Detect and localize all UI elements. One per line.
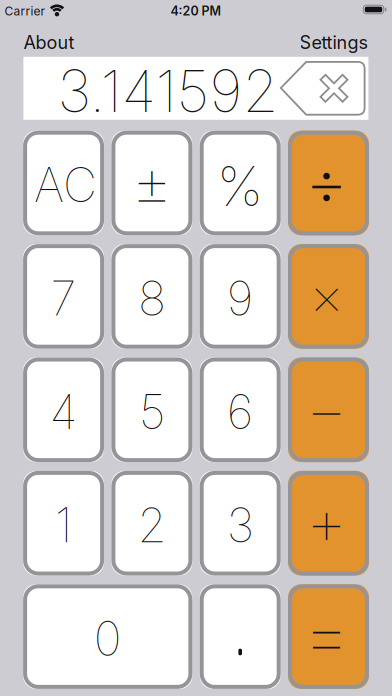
button[interactable]: Decimal point bbox=[200, 584, 281, 689]
button[interactable]: Divide bbox=[288, 131, 369, 235]
button[interactable]: 4 bbox=[23, 357, 104, 462]
staticText: 1 bbox=[55, 497, 72, 554]
button[interactable]: About bbox=[23, 32, 74, 53]
staticText: 3 bbox=[227, 497, 254, 554]
staticText: 7 bbox=[51, 270, 77, 327]
staticText: Carrier bbox=[4, 4, 45, 18]
button[interactable]: 5 bbox=[111, 357, 192, 462]
button[interactable]: % bbox=[200, 131, 281, 235]
button[interactable]: 0 bbox=[23, 584, 192, 689]
staticText: Settings bbox=[299, 32, 368, 53]
staticText: AC bbox=[34, 157, 97, 213]
button[interactable]: + bbox=[288, 471, 369, 575]
staticText: 6 bbox=[227, 383, 254, 440]
button[interactable]: − bbox=[288, 357, 369, 462]
staticText: ± bbox=[131, 144, 172, 222]
staticText: 9 bbox=[227, 270, 254, 327]
button[interactable]: 2 bbox=[111, 471, 192, 575]
staticText: 2 bbox=[137, 497, 166, 554]
staticText: 5 bbox=[139, 383, 165, 440]
button[interactable]: 8 bbox=[111, 244, 192, 349]
staticText: 3.141592 bbox=[57, 56, 278, 126]
staticText: + bbox=[305, 481, 347, 561]
button[interactable]: 6 bbox=[200, 357, 281, 462]
staticText: 0 bbox=[94, 610, 122, 667]
button[interactable]: = bbox=[288, 584, 369, 689]
button[interactable]: Delete bbox=[280, 61, 365, 116]
button[interactable]: 1 bbox=[23, 471, 104, 575]
button[interactable]: 9 bbox=[200, 244, 281, 349]
staticText: 4:20 PM bbox=[170, 3, 221, 18]
button[interactable]: 7 bbox=[23, 244, 104, 349]
button[interactable]: AC bbox=[23, 131, 104, 235]
staticText: − bbox=[305, 369, 347, 449]
button[interactable]: 3 bbox=[200, 471, 281, 575]
staticText: 4 bbox=[50, 383, 78, 440]
staticText: % bbox=[217, 153, 264, 219]
staticText: 8 bbox=[138, 270, 166, 327]
staticText: About bbox=[23, 32, 74, 53]
staticText: × bbox=[309, 263, 343, 328]
staticText: = bbox=[301, 585, 352, 682]
button[interactable]: × bbox=[288, 244, 369, 349]
button[interactable]: ± bbox=[111, 131, 192, 235]
button[interactable]: Settings bbox=[299, 32, 368, 53]
